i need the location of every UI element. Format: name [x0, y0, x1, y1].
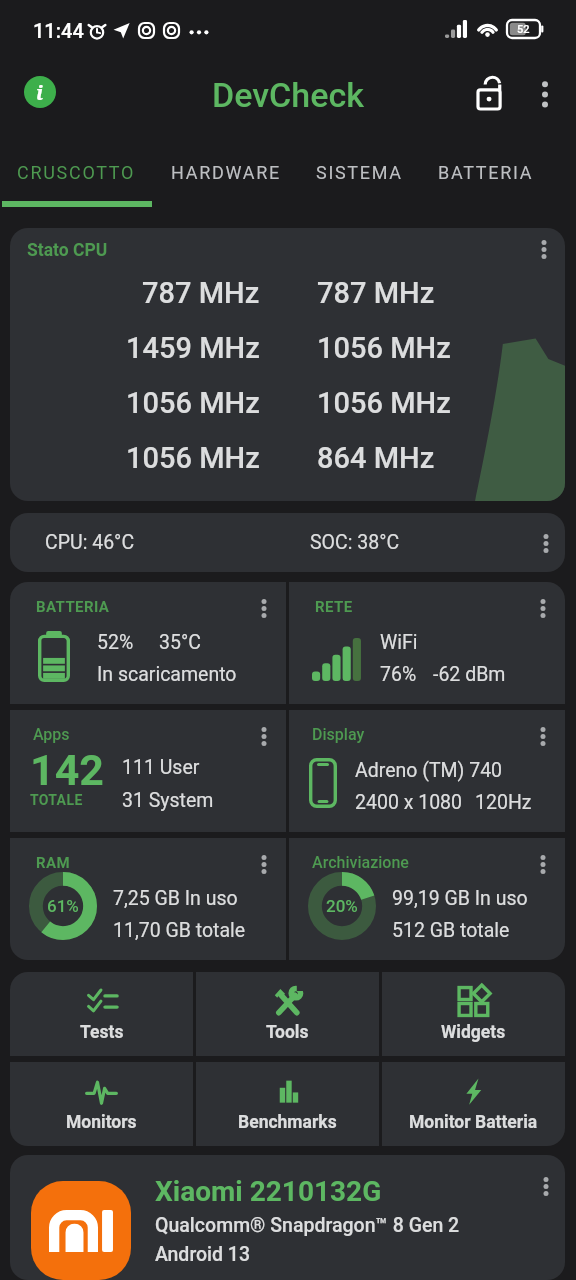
staticText: 11:44 [33, 19, 84, 42]
button[interactable]: Info [24, 76, 56, 108]
staticText: 7,25 GB In uso [113, 887, 238, 910]
staticText: 1056 MHz [126, 441, 260, 475]
staticText: SOC: 38°C [310, 531, 400, 554]
staticText: 1056 MHz [126, 386, 260, 420]
staticText: DevCheck [212, 75, 364, 115]
button[interactable]: Tools [196, 972, 379, 1056]
button[interactable]: Menu [529, 232, 559, 266]
button[interactable]: Unlock [464, 67, 518, 121]
button[interactable]: Menu [528, 719, 558, 753]
staticText: Xiaomi 2210132G [155, 1175, 382, 1208]
button[interactable]: RETE [289, 582, 565, 704]
staticText: 120Hz [475, 791, 532, 814]
button[interactable]: Display [289, 710, 565, 832]
staticText: 1056 MHz [317, 331, 451, 365]
staticText: 99,19 GB In uso [392, 887, 528, 910]
staticText: WiFi [380, 631, 418, 654]
staticText: RAM [36, 854, 71, 872]
staticText: 2400 x 1080 [355, 791, 463, 814]
staticText: Apps [33, 725, 70, 744]
button[interactable]: Menu [249, 719, 279, 753]
button[interactable]: HARDWARE [153, 143, 298, 201]
staticText: 31 System [122, 789, 214, 812]
staticText: Display [312, 725, 365, 744]
staticText: Widgets [441, 1022, 506, 1043]
staticText: RETE [315, 598, 353, 616]
staticText: 787 MHz [142, 276, 260, 310]
button[interactable]: SISTEMA [298, 143, 420, 201]
button[interactable]: Archiviazione [289, 838, 565, 960]
staticText: 52 [517, 23, 530, 36]
button[interactable]: Tests [10, 972, 193, 1056]
staticText: 61% [47, 896, 79, 916]
staticText: In scaricamento [97, 663, 237, 686]
button[interactable]: BATTERIA [420, 143, 552, 201]
staticText: CPU: 46°C [45, 531, 135, 554]
button[interactable]: CPU: 46°C [10, 513, 565, 572]
staticText: Stato CPU [27, 240, 108, 261]
staticText: Monitor Batteria [409, 1112, 538, 1133]
staticText: HARDWARE [171, 162, 281, 183]
button[interactable]: Menu [249, 847, 279, 881]
staticText: BATTERIA [438, 162, 534, 183]
staticText: Android 13 [155, 1243, 251, 1266]
staticText: Monitors [66, 1112, 137, 1133]
button[interactable]: Menu [531, 1169, 561, 1203]
staticText: 52% [97, 631, 134, 654]
button[interactable]: Monitors [10, 1062, 193, 1146]
staticText: 20% [326, 896, 358, 916]
button[interactable]: Apps [10, 710, 286, 832]
staticText: Adreno (TM) 740 [355, 759, 503, 782]
staticText: Tools [266, 1022, 309, 1043]
button[interactable]: Menu [531, 526, 561, 560]
staticText: 142 [30, 745, 105, 795]
staticText: Qualcomm® Snapdragon™ 8 Gen 2 [155, 1214, 460, 1237]
staticText: 1056 MHz [317, 386, 451, 420]
staticText: Benchmarks [238, 1112, 337, 1133]
staticText: -62 dBm [433, 663, 506, 686]
staticText: Archiviazione [312, 853, 409, 872]
staticText: i [36, 79, 44, 106]
button[interactable]: Xiaomi 2210132G [10, 1155, 565, 1280]
staticText: CRUSCOTTO [17, 162, 136, 183]
button[interactable]: Menu [528, 591, 558, 625]
button[interactable]: Menu [249, 591, 279, 625]
button[interactable]: Benchmarks [196, 1062, 379, 1146]
staticText: 35°C [159, 631, 201, 654]
staticText: 76% [380, 663, 417, 686]
staticText: TOTALE [30, 792, 83, 808]
staticText: 512 GB totale [392, 919, 510, 942]
staticText: 1459 MHz [126, 331, 260, 365]
staticText: BATTERIA [36, 598, 110, 616]
button[interactable]: Menu [528, 847, 558, 881]
staticText: SISTEMA [316, 162, 403, 183]
staticText: Tests [80, 1022, 124, 1043]
button[interactable]: BATTERIA [10, 582, 286, 704]
staticText: 111 User [122, 756, 200, 779]
button[interactable]: Stato CPU [10, 228, 565, 501]
staticText: 787 MHz [317, 276, 435, 310]
button[interactable]: CRUSCOTTO [0, 143, 153, 201]
button[interactable]: RAM [10, 838, 286, 960]
button[interactable]: More options [518, 67, 572, 121]
button[interactable]: Monitor Batteria [382, 1062, 565, 1146]
staticText: 11,70 GB totale [113, 919, 246, 942]
button[interactable]: Widgets [382, 972, 565, 1056]
staticText: 864 MHz [317, 441, 435, 475]
